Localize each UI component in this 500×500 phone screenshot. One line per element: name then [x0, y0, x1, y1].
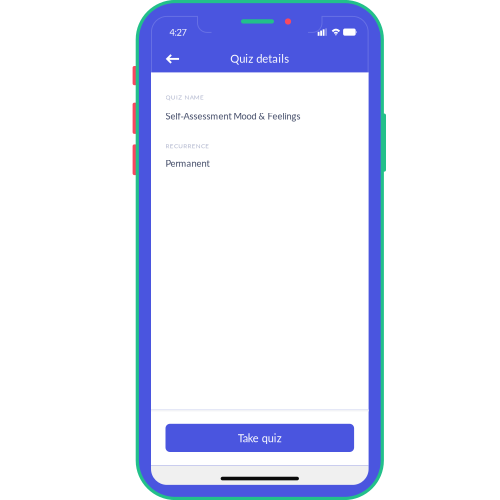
staticText: RECURRENCE — [166, 142, 209, 149]
staticText: Permanent — [166, 157, 210, 169]
button[interactable]: Back — [166, 48, 193, 70]
button[interactable]: Take quiz — [165, 424, 354, 452]
staticText: Self-Assessment Mood & Feelings — [166, 110, 301, 121]
staticText: QUIZ NAME — [166, 93, 204, 101]
staticText: Take quiz — [238, 431, 282, 444]
staticText: Quiz details — [230, 52, 289, 65]
staticText: 4:27 — [169, 26, 186, 38]
